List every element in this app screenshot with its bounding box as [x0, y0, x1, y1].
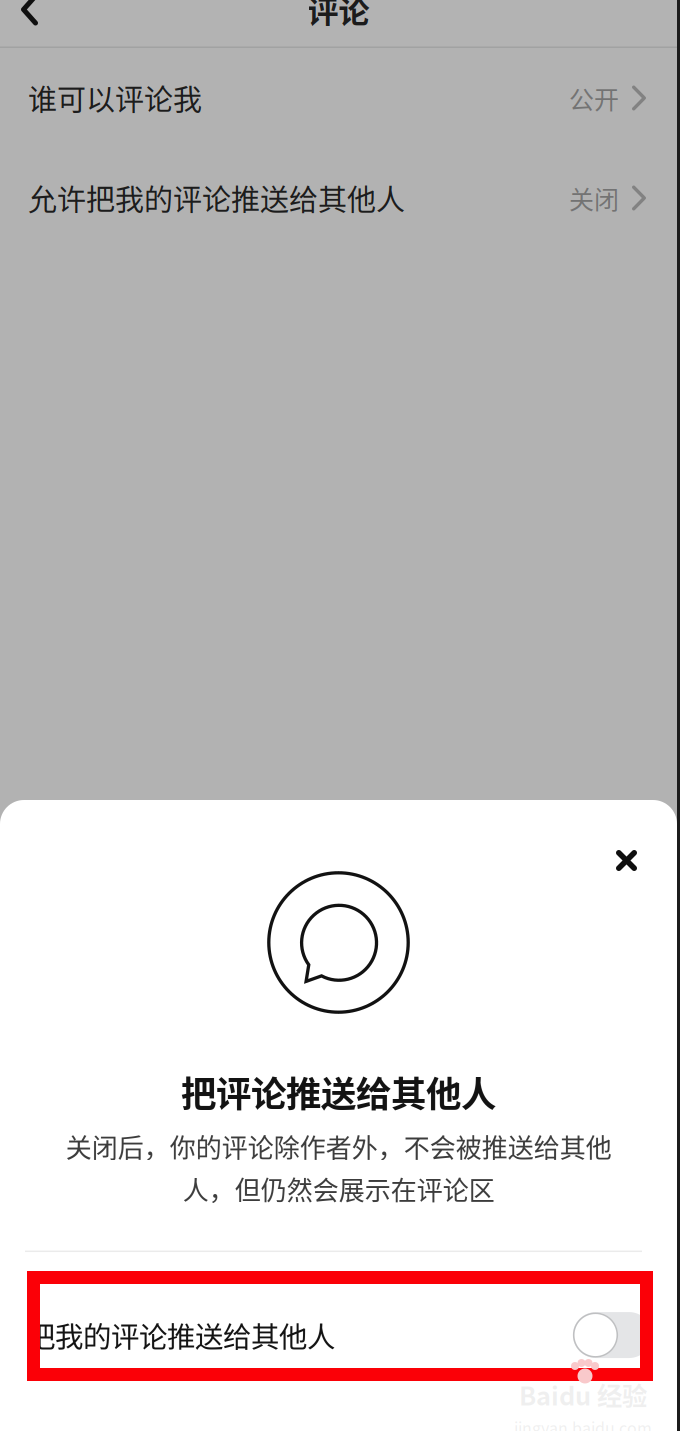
button[interactable]: 返回: [0, 0, 59, 33]
button[interactable]: 关闭: [600, 834, 653, 887]
button[interactable]: 允许把我的评论推送给其他人: [0, 148, 677, 248]
staticText: 谁可以评论我: [28, 77, 202, 119]
staticText: Baidu 经验: [519, 1376, 647, 1413]
staticText: 把我的评论推送给其他人: [27, 1314, 335, 1356]
staticText: 公开: [569, 80, 619, 116]
staticText: 评论: [307, 0, 369, 32]
button[interactable]: 把我的评论推送给其他人: [0, 1252, 677, 1418]
button[interactable]: 谁可以评论我: [0, 48, 677, 148]
staticText: 关闭: [569, 180, 619, 216]
staticText: 关闭后，你的评论除作者外，不会被推送给其他 人，但仍然会展示在评论区: [65, 1127, 611, 1208]
staticText: 把评论推送给其他人: [181, 1066, 496, 1117]
staticText: 允许把我的评论推送给其他人: [28, 177, 405, 219]
staticText: jingyan.baidu.com: [514, 1416, 652, 1431]
